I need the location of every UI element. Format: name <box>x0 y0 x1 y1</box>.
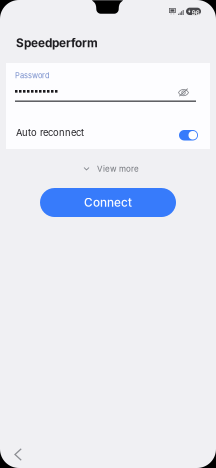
button[interactable]: Show password <box>174 84 193 101</box>
button[interactable]: Auto reconnect <box>174 125 203 145</box>
staticText: Password <box>15 71 50 80</box>
staticText: Auto reconnect <box>16 127 84 138</box>
staticText: Connect <box>84 195 132 210</box>
button[interactable]: View more <box>77 159 145 179</box>
staticText: 96 <box>192 9 200 17</box>
button[interactable]: Back <box>5 439 31 468</box>
staticText: Speedperform <box>16 36 98 50</box>
button[interactable]: Connect <box>40 188 176 217</box>
staticText: View more <box>97 164 139 174</box>
